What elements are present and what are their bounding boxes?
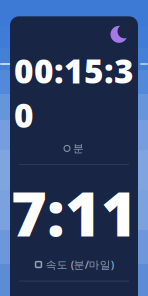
staticText: 분 xyxy=(73,142,84,155)
staticText: 속도 (분/마일) xyxy=(46,257,114,272)
staticText: 7:11 xyxy=(11,172,137,253)
staticText: 00:15:30 xyxy=(14,48,134,137)
